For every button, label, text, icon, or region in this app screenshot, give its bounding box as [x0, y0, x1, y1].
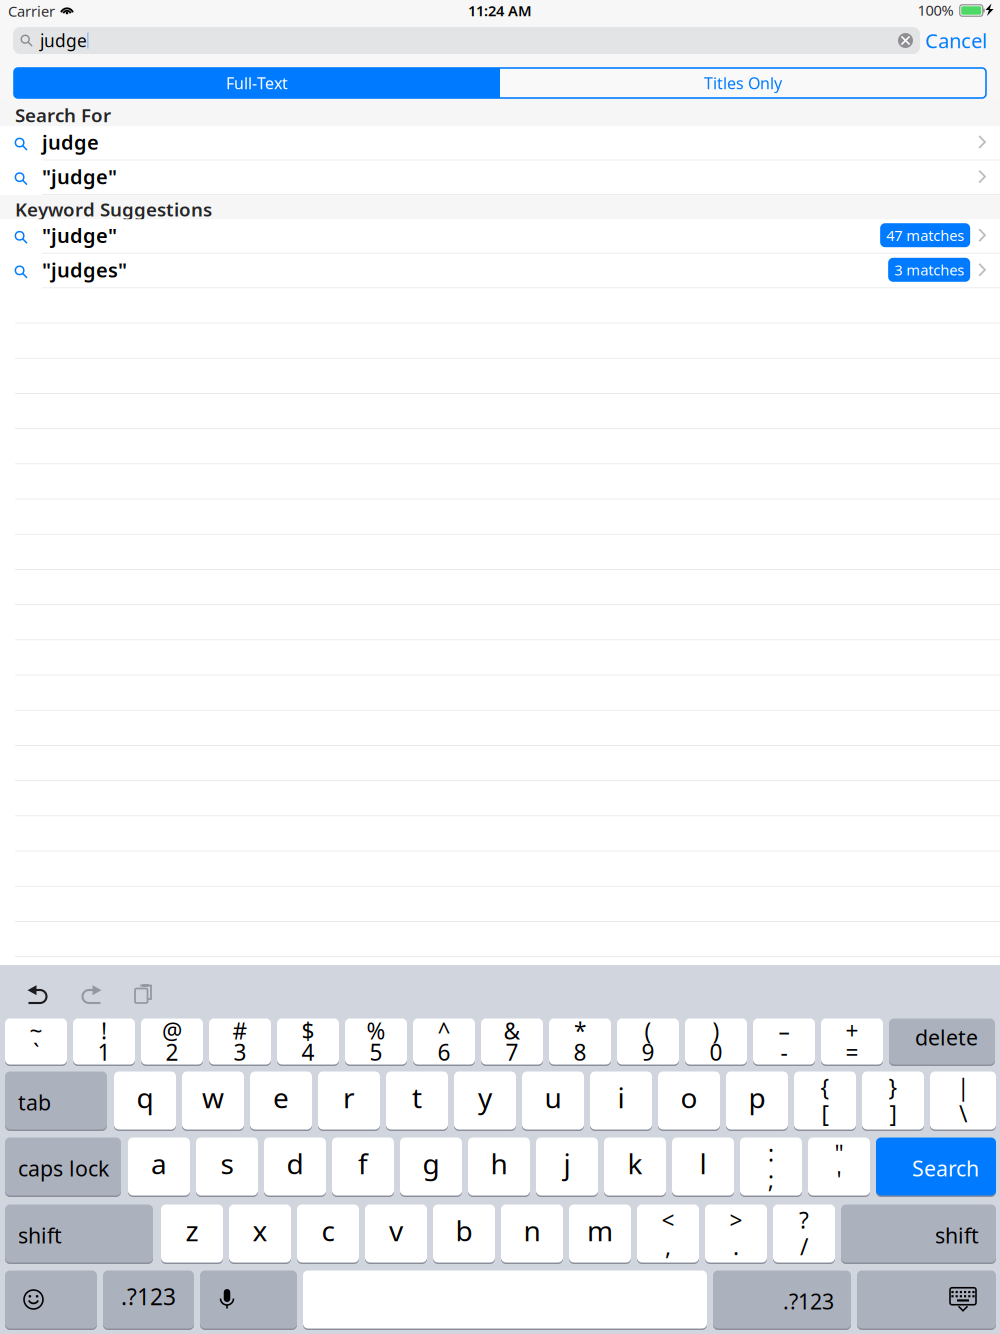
button[interactable]: "judge" [0, 219, 1000, 254]
button[interactable]: < [637, 1204, 699, 1262]
button[interactable]: Hide keyboard [857, 1270, 996, 1328]
staticText: 6 [437, 1037, 450, 1067]
button[interactable]: Undo [27, 985, 49, 1005]
staticText: l [699, 1145, 706, 1182]
button[interactable]: ? [773, 1204, 835, 1262]
staticText: "judge" [42, 222, 117, 248]
button[interactable]: b [433, 1204, 495, 1262]
staticText: : [768, 1138, 774, 1168]
staticText: Carrier [8, 1, 55, 21]
button[interactable]: { [794, 1071, 856, 1129]
button[interactable]: ! [73, 1018, 135, 1064]
button[interactable]: | [930, 1071, 996, 1129]
button[interactable]: o [658, 1071, 720, 1129]
button[interactable]: shift [841, 1204, 996, 1262]
button[interactable]: p [726, 1071, 788, 1129]
button[interactable]: q [114, 1071, 176, 1129]
button[interactable]: m [569, 1204, 631, 1262]
button[interactable]: Full-Text [14, 68, 500, 98]
button[interactable]: e [250, 1071, 312, 1129]
button[interactable]: "judge" [0, 161, 1000, 195]
button[interactable]: i [590, 1071, 652, 1129]
button[interactable]: Redo [80, 985, 102, 1005]
staticText: * [574, 1016, 586, 1046]
staticText: ] [889, 1098, 896, 1129]
staticText: ? [799, 1205, 809, 1235]
button[interactable]: s [196, 1137, 258, 1195]
button[interactable]: * [549, 1018, 611, 1064]
staticText: s [220, 1145, 233, 1182]
button[interactable]: – [753, 1018, 815, 1064]
button[interactable]: space [303, 1270, 707, 1328]
button[interactable]: l [672, 1137, 734, 1195]
staticText: ( [644, 1016, 651, 1046]
staticText: i [617, 1079, 624, 1116]
button[interactable]: Search [876, 1137, 996, 1195]
button[interactable]: " [808, 1137, 870, 1195]
button[interactable]: k [604, 1137, 666, 1195]
button[interactable]: @ [141, 1018, 203, 1064]
button[interactable]: c [297, 1204, 359, 1262]
staticText: ) [712, 1016, 719, 1046]
button[interactable]: ( [617, 1018, 679, 1064]
button[interactable]: Emoji [5, 1270, 97, 1328]
button[interactable]: ~ [5, 1018, 67, 1064]
button[interactable]: $ [277, 1018, 339, 1064]
button[interactable]: # [209, 1018, 271, 1064]
button[interactable]: judge [0, 126, 1000, 161]
button[interactable]: w [182, 1071, 244, 1129]
button[interactable]: v [365, 1204, 427, 1262]
staticText: judge [40, 29, 87, 52]
button[interactable]: "judges" [0, 254, 1000, 288]
button[interactable]: Dictation [200, 1270, 297, 1328]
button[interactable]: % [345, 1018, 407, 1064]
button[interactable]: caps lock [5, 1137, 121, 1195]
staticText: k [627, 1145, 642, 1182]
button[interactable]: t [386, 1071, 448, 1129]
button[interactable]: n [501, 1204, 563, 1262]
staticText: tab [18, 1088, 51, 1116]
button[interactable]: : [740, 1137, 802, 1195]
button[interactable]: r [318, 1071, 380, 1129]
button[interactable]: & [481, 1018, 543, 1064]
staticText: p [748, 1079, 765, 1116]
staticText: ~ [29, 1016, 42, 1046]
staticText: = [845, 1037, 858, 1067]
staticText: o [680, 1079, 697, 1116]
staticText: " [834, 1138, 843, 1168]
button[interactable]: delete [889, 1018, 995, 1064]
button[interactable]: j [536, 1137, 598, 1195]
button[interactable]: a [128, 1137, 190, 1195]
staticText: z [185, 1212, 198, 1249]
button[interactable]: Cancel [925, 27, 981, 54]
staticText: .?123 [783, 1287, 834, 1315]
staticText: + [845, 1016, 858, 1046]
staticText: Cancel [925, 27, 987, 54]
button[interactable]: > [705, 1204, 767, 1262]
button[interactable]: + [821, 1018, 883, 1064]
staticText: 2 [165, 1037, 178, 1067]
staticText: 3 matches [894, 260, 964, 280]
button[interactable]: .?123 [713, 1270, 851, 1328]
staticText: @ [162, 1016, 182, 1046]
button[interactable]: Titles Only [500, 68, 986, 98]
button[interactable]: h [468, 1137, 530, 1195]
staticText: Titles Only [704, 72, 782, 94]
button[interactable]: ^ [413, 1018, 475, 1064]
button[interactable]: } [862, 1071, 924, 1129]
staticText: [ [821, 1098, 828, 1129]
button[interactable]: ) [685, 1018, 747, 1064]
button[interactable]: x [229, 1204, 291, 1262]
button[interactable]: z [161, 1204, 223, 1262]
button[interactable]: .?123 [103, 1270, 194, 1328]
button[interactable]: y [454, 1071, 516, 1129]
button[interactable]: u [522, 1071, 584, 1129]
staticText: x [252, 1212, 267, 1249]
staticText: g [422, 1145, 439, 1182]
button[interactable]: Paste [134, 984, 153, 1004]
button[interactable]: shift [5, 1204, 153, 1262]
button[interactable]: f [332, 1137, 394, 1195]
button[interactable]: tab [5, 1071, 107, 1129]
button[interactable]: d [264, 1137, 326, 1195]
button[interactable]: g [400, 1137, 462, 1195]
